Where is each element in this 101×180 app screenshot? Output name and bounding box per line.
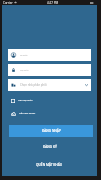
staticText: Lưu mật khẩu [18,99,33,102]
staticText: Mật khẩu [20,69,29,72]
staticText: 4:27 PM [47,1,59,5]
button[interactable]: QUÊN MẬT KHẨU [2,161,97,168]
button[interactable]: Chọn nhà phân phối [8,79,91,91]
button[interactable]: ĐĂNG KÝ [2,143,97,150]
button[interactable]: Lưu mật khẩu [11,97,33,104]
button[interactable]: Cấu hình server [11,110,36,117]
button[interactable]: Tài khoản [8,49,91,61]
staticText: ĐĂNG KÝ [43,145,57,149]
staticText: Chọn nhà phân phối [20,83,47,87]
staticText: Carrier [3,1,13,5]
staticText: QUÊN MẬT KHẨU [36,163,63,167]
staticText: Tài khoản [20,54,28,56]
button[interactable]: ĐĂNG NHẬP [9,125,93,137]
button[interactable]: Mật khẩu [8,64,91,76]
staticText: Cấu hình server [19,112,36,115]
staticText: ĐĂNG NHẬP [42,129,61,133]
